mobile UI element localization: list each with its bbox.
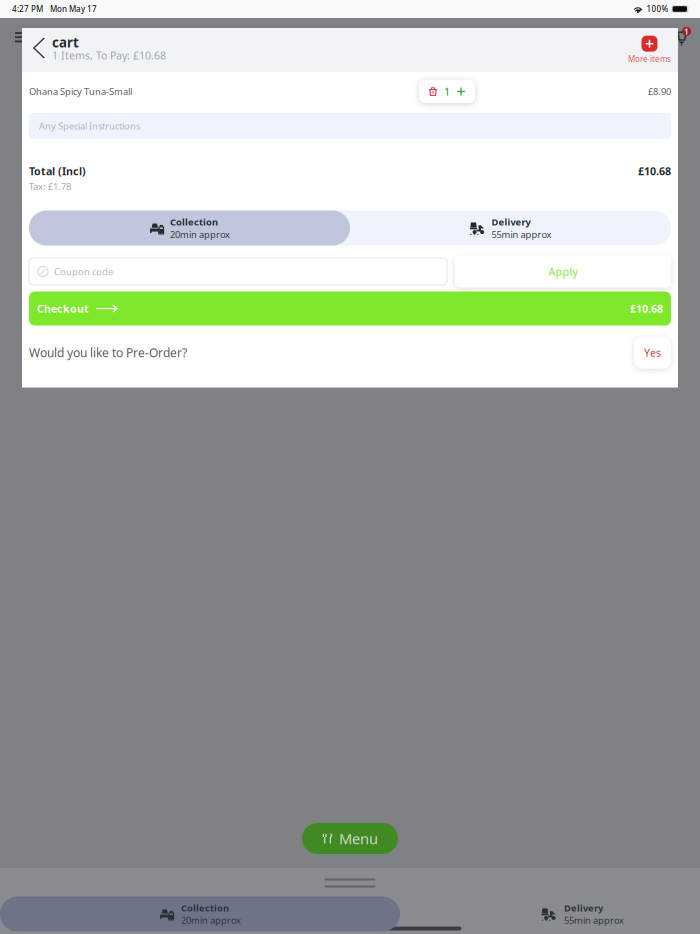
staticText: Would you like to Pre-Order? bbox=[29, 345, 187, 360]
staticText: 4:27 PM bbox=[12, 4, 43, 14]
button[interactable]: Collection bbox=[29, 211, 350, 246]
staticText: 1 Items, To Pay: £10.68 bbox=[52, 48, 166, 62]
staticText: £10.68 bbox=[630, 301, 663, 316]
staticText: £10.68 bbox=[638, 164, 671, 178]
button[interactable]: More items bbox=[628, 30, 678, 70]
staticText: Total (Incl) bbox=[29, 164, 86, 178]
staticText: Mon May 17 bbox=[50, 4, 97, 14]
staticText: Yes bbox=[644, 345, 661, 360]
staticText: Collection bbox=[181, 902, 229, 914]
staticText: More items bbox=[628, 54, 671, 64]
staticText: Delivery bbox=[491, 216, 530, 228]
button[interactable]: Remove item bbox=[426, 84, 440, 98]
staticText: Checkout bbox=[37, 301, 89, 316]
staticText: Apply bbox=[548, 264, 577, 279]
staticText: 100% bbox=[646, 4, 668, 14]
button[interactable]: Menu bbox=[302, 823, 398, 854]
staticText: 1 bbox=[444, 84, 450, 99]
button[interactable]: Apply bbox=[455, 256, 671, 288]
button[interactable]: Menu bbox=[0, 18, 26, 42]
button[interactable]: Yes bbox=[634, 337, 671, 369]
button[interactable]: Delivery bbox=[350, 211, 671, 246]
staticText: 20min approx bbox=[170, 228, 230, 240]
staticText: cart bbox=[52, 34, 79, 51]
staticText: Coupon code bbox=[54, 265, 113, 278]
staticText: 1 bbox=[684, 26, 689, 37]
staticText: Menu bbox=[339, 829, 378, 848]
staticText: Ohana Spicy Tuna-Small bbox=[29, 85, 132, 98]
staticText: Collection bbox=[170, 216, 218, 228]
staticText: £8.90 bbox=[648, 85, 671, 98]
staticText: Tax: £1.78 bbox=[29, 180, 71, 193]
staticText: Any Special Instructions bbox=[39, 120, 140, 132]
button[interactable]: Add one bbox=[454, 84, 468, 98]
button[interactable]: cart bbox=[22, 30, 166, 70]
button[interactable]: Cart bbox=[678, 18, 700, 46]
button[interactable]: Checkout bbox=[29, 292, 671, 326]
staticText: Delivery bbox=[564, 902, 603, 914]
staticText: 55min approx bbox=[564, 914, 624, 926]
staticText: 55min approx bbox=[491, 228, 551, 240]
staticText: 20min approx bbox=[181, 914, 241, 926]
